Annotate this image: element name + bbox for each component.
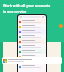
button[interactable] — [18, 24, 46, 29]
staticText: in one service — [3, 9, 27, 14]
button[interactable] — [18, 44, 46, 49]
button[interactable] — [18, 29, 46, 34]
button[interactable] — [18, 49, 46, 54]
button[interactable]: Microsoft account — [2, 57, 62, 64]
other: Microsoft account — [3, 59, 7, 63]
button[interactable] — [18, 54, 46, 59]
button[interactable] — [18, 34, 46, 39]
button[interactable] — [18, 19, 46, 24]
button[interactable] — [18, 39, 46, 44]
button[interactable] — [18, 59, 46, 64]
button[interactable] — [18, 64, 46, 69]
staticText: Work with all your accounts — [3, 3, 51, 8]
